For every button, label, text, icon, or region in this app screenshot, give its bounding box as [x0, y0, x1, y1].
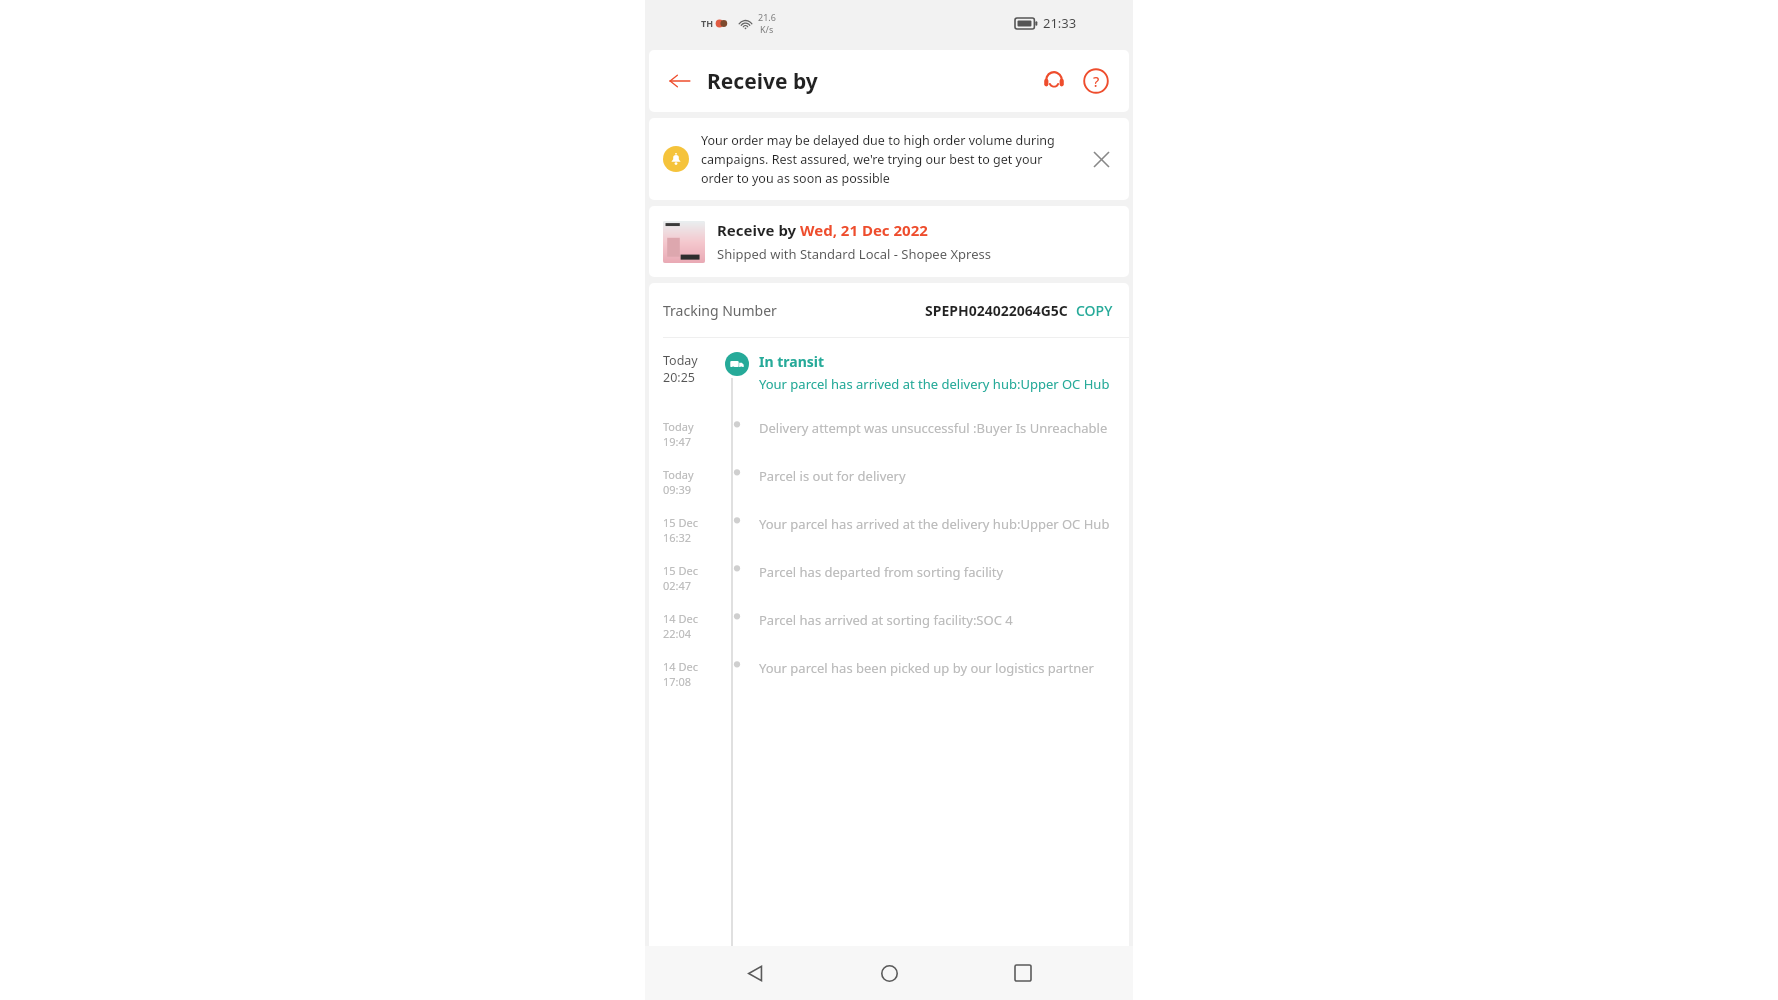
- staticText: Your order may be delayed due to high or…: [701, 132, 1077, 186]
- staticText: TH: [701, 17, 714, 29]
- button[interactable]: Back: [731, 949, 779, 997]
- staticText: Tracking Number: [663, 301, 777, 320]
- staticText: Parcel has departed from sorting facilit…: [759, 563, 1115, 581]
- staticText: 15 Dec: [663, 563, 698, 578]
- staticText: K/s: [760, 23, 774, 35]
- staticText: Today: [663, 467, 694, 482]
- button[interactable]: Receive by Wed, 21 Dec 2022: [649, 206, 1129, 277]
- staticText: Shipped with Standard Local - Shopee Xpr…: [717, 245, 991, 263]
- staticText: 21:33: [1043, 14, 1077, 32]
- staticText: Parcel has arrived at sorting facility:S…: [759, 611, 1115, 629]
- button[interactable]: Chat support: [1035, 62, 1073, 100]
- staticText: Your parcel has been picked up by our lo…: [759, 659, 1115, 677]
- staticText: COPY: [1076, 301, 1113, 320]
- button[interactable]: COPY: [1074, 299, 1115, 322]
- staticText: Today: [663, 352, 698, 369]
- button[interactable]: Dismiss: [1087, 145, 1115, 173]
- staticText: 17:08: [663, 674, 692, 689]
- staticText: 19:47: [663, 434, 692, 449]
- button[interactable]: Back: [663, 64, 697, 98]
- staticText: 09:39: [663, 482, 692, 497]
- staticText: In transit: [759, 352, 825, 371]
- staticText: Receive by: [707, 67, 818, 96]
- staticText: 14 Dec: [663, 659, 698, 674]
- button[interactable]: Help: [1077, 62, 1115, 100]
- button[interactable]: Recents: [999, 949, 1047, 997]
- staticText: 22:04: [663, 626, 692, 641]
- staticText: 02:47: [663, 578, 692, 593]
- staticText: Delivery attempt was unsuccessful :Buyer…: [759, 419, 1115, 437]
- staticText: Your parcel has arrived at the delivery …: [759, 375, 1110, 393]
- staticText: 15 Dec: [663, 515, 698, 530]
- staticText: SPEPH024022064G5C: [925, 301, 1068, 320]
- staticText: Receive by Wed, 21 Dec 2022: [717, 220, 928, 240]
- staticText: ?: [1093, 72, 1100, 91]
- staticText: Your parcel has arrived at the delivery …: [759, 515, 1115, 533]
- staticText: Parcel is out for delivery: [759, 467, 1115, 485]
- button[interactable]: Home: [865, 949, 913, 997]
- staticText: 20:25: [663, 369, 695, 386]
- staticText: 14 Dec: [663, 611, 698, 626]
- staticText: 16:32: [663, 530, 692, 545]
- staticText: 21.6: [758, 11, 776, 23]
- staticText: Today: [663, 419, 694, 434]
